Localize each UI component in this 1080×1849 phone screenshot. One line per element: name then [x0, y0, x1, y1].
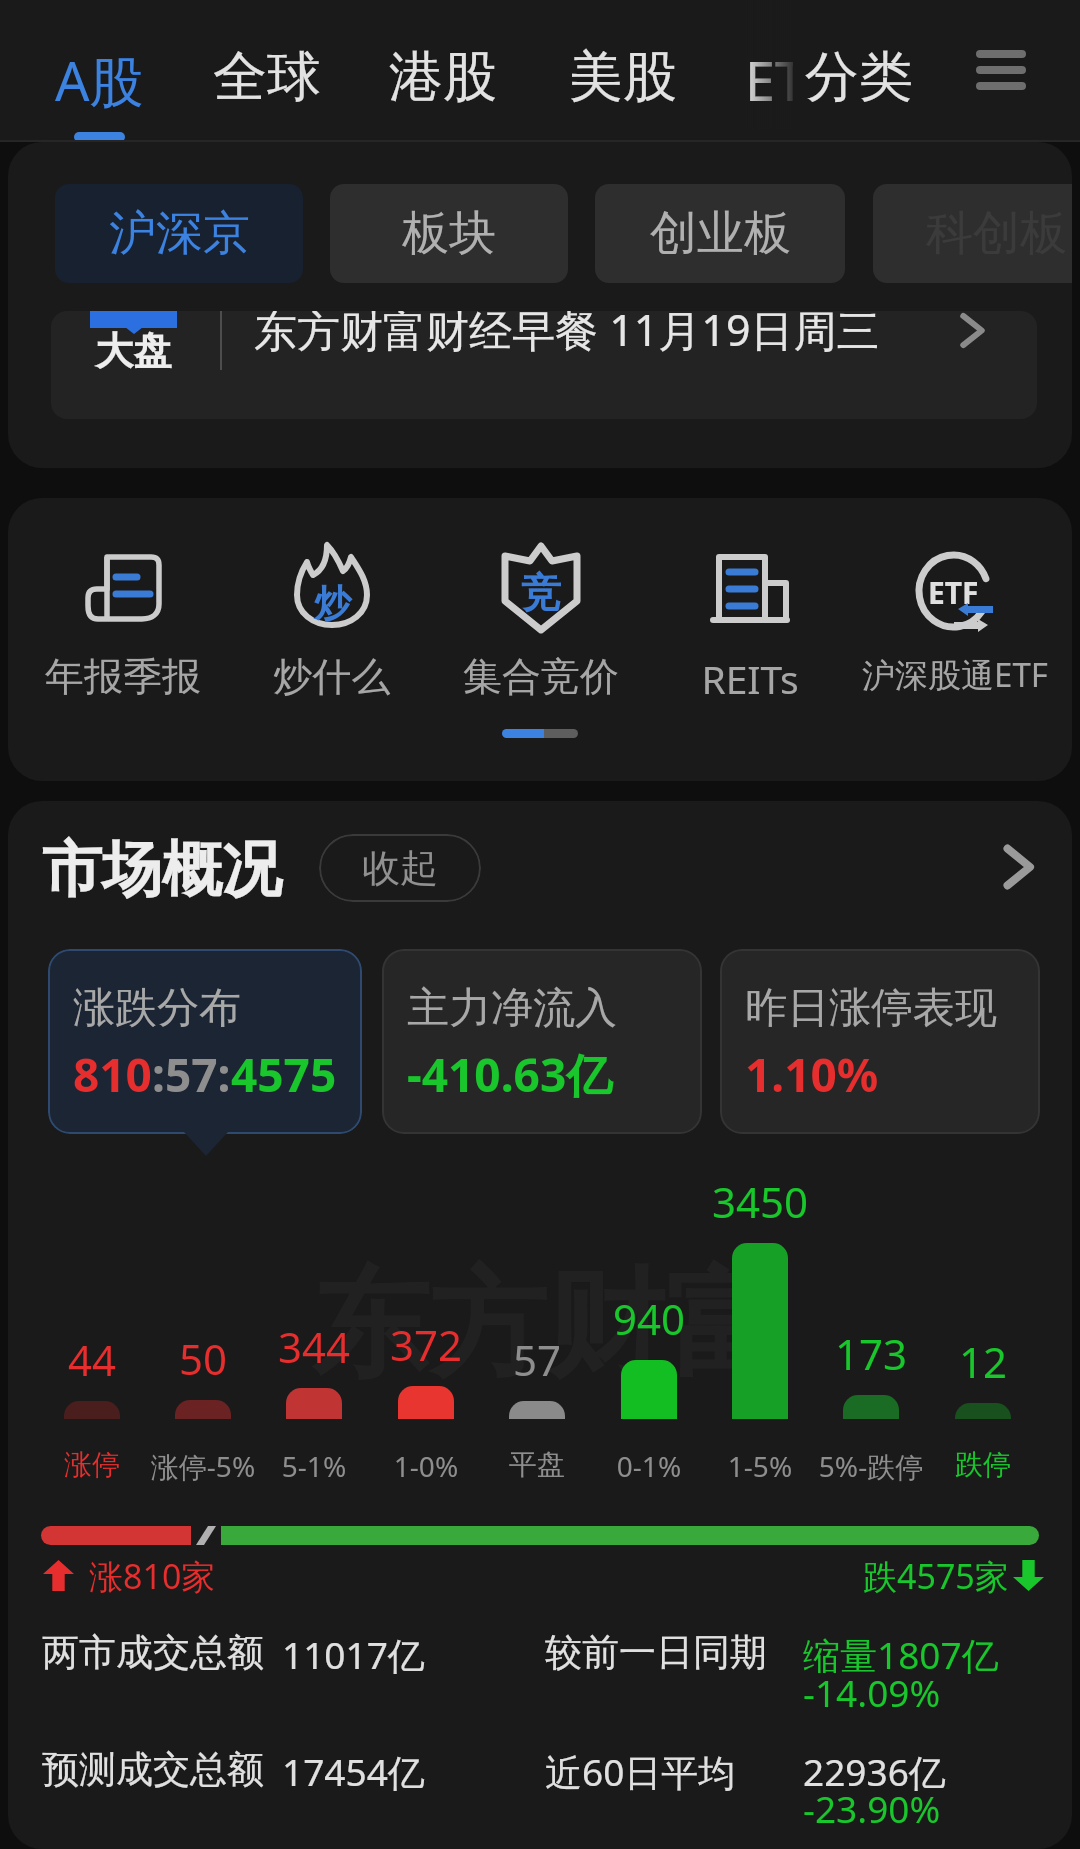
staticText: 涨停 [22, 1447, 162, 1482]
staticText: REITs [646, 652, 854, 705]
button[interactable]: 57 [467, 1181, 607, 1481]
staticText: 22936亿 [803, 1746, 946, 1797]
staticText: 缩量1807亿 [803, 1629, 999, 1680]
staticText: 美股 [569, 43, 677, 111]
button[interactable]: 港股 [389, 0, 529, 142]
staticText: 主力净流入 [407, 982, 617, 1035]
staticText: 竞 [521, 567, 561, 617]
staticText: 涨跌分布 [73, 982, 241, 1035]
button[interactable]: 940 [579, 1181, 719, 1481]
staticText: 较前一日同期 [545, 1629, 767, 1676]
staticText: 涨停-5% [133, 1447, 273, 1485]
button[interactable]: Menu [955, 28, 1047, 112]
staticText: 两市成交总额 [42, 1629, 264, 1676]
staticText: 5%-跌停 [801, 1447, 941, 1485]
staticText: -14.09% [803, 1667, 941, 1717]
button[interactable]: 173 [801, 1181, 941, 1481]
button[interactable]: 美股 [569, 0, 709, 142]
staticText: 分类 [805, 43, 913, 111]
button[interactable]: 344 [244, 1181, 384, 1481]
button[interactable]: REITs [646, 498, 854, 718]
staticText: 50 [133, 1330, 273, 1387]
button[interactable]: 44 [22, 1181, 162, 1481]
staticText: 港股 [389, 43, 497, 111]
button[interactable]: 12 [913, 1181, 1053, 1481]
staticText: ETF [745, 43, 834, 117]
staticText: 板块 [402, 204, 496, 263]
staticText: 1-5% [690, 1447, 830, 1485]
button[interactable]: 市场概况 [42, 832, 282, 908]
staticText: 372 [356, 1316, 496, 1373]
staticText: ETF [928, 572, 979, 613]
staticText: 跌停 [913, 1447, 1053, 1482]
button[interactable]: 板块 [330, 184, 568, 283]
staticText: 收起 [362, 844, 438, 892]
staticText: 4575 [231, 1043, 337, 1106]
staticText: 跌4575家 [863, 1553, 1009, 1599]
button[interactable]: 昨日涨停表现 [720, 949, 1040, 1134]
staticText: 炒 [314, 580, 351, 627]
button[interactable]: ETF [851, 498, 1059, 718]
staticText: 沪深股通ETF [851, 652, 1059, 697]
button[interactable]: 沪深京 [55, 184, 303, 283]
staticText: 17454亿 [282, 1746, 425, 1797]
staticText: 东方财富 [311, 1251, 783, 1400]
staticText: 科创板 [926, 204, 1067, 263]
button[interactable]: 科创板 [873, 184, 1072, 283]
staticText: 炒什么 [228, 652, 436, 701]
staticText: -410.63亿 [407, 1043, 613, 1106]
button[interactable]: 焦点 [51, 311, 1037, 419]
button[interactable]: 收起 [319, 834, 481, 902]
button[interactable]: 分类 [793, 0, 951, 130]
button[interactable]: 3450 [690, 1181, 830, 1481]
staticText: 0-1% [579, 1447, 719, 1485]
button[interactable]: 涨跌分布 [48, 949, 362, 1134]
button[interactable]: Open market overview [993, 841, 1045, 893]
staticText: 3450 [690, 1173, 830, 1230]
staticText: 大盘 [90, 327, 177, 375]
staticText: 涨810家 [89, 1553, 216, 1599]
staticText: 1.10% [745, 1043, 879, 1106]
staticText: 平盘 [467, 1447, 607, 1482]
staticText: 年报季报 [19, 652, 227, 701]
staticText: 810 [73, 1043, 152, 1106]
staticText: 57 [467, 1331, 607, 1388]
staticText: 12 [913, 1333, 1053, 1390]
staticText: -23.90% [803, 1783, 941, 1833]
button[interactable]: 创业板 [595, 184, 845, 283]
staticText: 1-0% [356, 1447, 496, 1485]
button[interactable]: 主力净流入 [382, 949, 702, 1134]
staticText: 预测成交总额 [42, 1746, 264, 1793]
button[interactable]: 50 [133, 1181, 273, 1481]
staticText: 集合竞价 [437, 652, 645, 701]
button[interactable]: 全球 [213, 0, 353, 142]
button[interactable]: 年报季报 [19, 498, 227, 718]
staticText: 940 [579, 1290, 719, 1347]
staticText: 近60日平均 [545, 1746, 736, 1797]
button[interactable]: 炒 [228, 498, 436, 718]
staticText: 全球 [213, 43, 321, 111]
staticText: 11017亿 [282, 1629, 425, 1680]
staticText: 东方财富财经早餐 11月19日周三 [254, 311, 880, 359]
staticText: :57: [152, 1043, 231, 1106]
staticText: A股 [55, 43, 144, 117]
staticText: 5-1% [244, 1447, 384, 1485]
staticText: 沪深京 [109, 204, 250, 263]
staticText: 44 [22, 1331, 162, 1388]
staticText: 创业板 [650, 204, 791, 263]
staticText: 173 [801, 1325, 941, 1382]
button[interactable]: 竞 [437, 498, 645, 718]
button[interactable]: ETF [745, 0, 885, 142]
staticText: 344 [244, 1318, 384, 1375]
button[interactable]: 372 [356, 1181, 496, 1481]
staticText: 昨日涨停表现 [745, 982, 997, 1035]
button[interactable]: A股 [55, 0, 195, 142]
